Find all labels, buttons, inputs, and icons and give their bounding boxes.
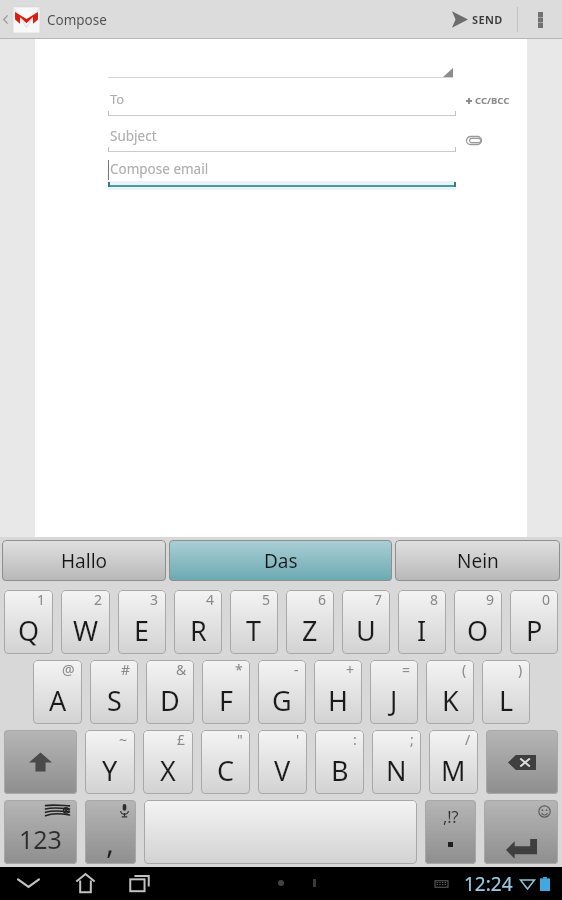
button[interactable]: Comma	[85, 800, 136, 864]
button[interactable]: O	[454, 590, 502, 654]
staticText: ;	[410, 730, 414, 749]
staticText: CC/BCC	[475, 94, 510, 107]
staticText: 8	[430, 590, 439, 609]
staticText: F	[219, 682, 234, 719]
button[interactable]: Period	[425, 800, 476, 864]
staticText: ,!?	[443, 806, 459, 828]
button[interactable]: B	[315, 730, 364, 794]
button[interactable]: Nein	[395, 540, 560, 581]
staticText: 0	[542, 590, 551, 609]
staticText: (	[462, 660, 467, 679]
button[interactable]: N	[372, 730, 421, 794]
button[interactable]: I	[398, 590, 446, 654]
button[interactable]: W	[61, 590, 110, 654]
button[interactable]: X	[143, 730, 193, 794]
staticText: G	[272, 682, 292, 719]
staticText: D	[160, 682, 180, 719]
button[interactable]: Numbers	[4, 800, 77, 864]
staticText: Compose email	[110, 160, 209, 178]
staticText: Y	[102, 752, 118, 789]
button[interactable]: C	[201, 730, 250, 794]
staticText: T	[246, 612, 262, 649]
button[interactable]: Enter	[484, 800, 558, 864]
staticText: Nein	[457, 548, 499, 574]
staticText: S	[107, 682, 122, 719]
button[interactable]: Attach file	[466, 130, 490, 150]
staticText: +	[346, 660, 355, 679]
button[interactable]: R	[174, 590, 222, 654]
staticText: M	[441, 752, 466, 789]
staticText: U	[356, 612, 376, 649]
staticText: H	[328, 682, 349, 719]
button[interactable]: Z	[286, 590, 334, 654]
button[interactable]: H	[314, 660, 362, 724]
button[interactable]: Navigate up	[0, 0, 42, 39]
staticText: 5	[262, 590, 271, 609]
button[interactable]: L	[482, 660, 530, 724]
button[interactable]: Hallo	[2, 540, 166, 581]
button[interactable]: Y	[85, 730, 135, 794]
staticText: R	[190, 612, 207, 649]
staticText: 6	[318, 590, 327, 609]
staticText: Subject	[110, 127, 157, 145]
button[interactable]: S	[90, 660, 138, 724]
staticText: 9	[486, 590, 495, 609]
staticText: K	[442, 682, 459, 719]
button[interactable]: Das	[169, 540, 392, 581]
button[interactable]: More options	[518, 0, 562, 39]
button[interactable]: Recent apps	[117, 867, 161, 900]
staticText: L	[499, 682, 514, 719]
button[interactable]: J	[370, 660, 418, 724]
staticText: I	[417, 612, 427, 649]
staticText: N	[386, 752, 407, 789]
staticText: )	[518, 660, 523, 679]
staticText: £	[177, 730, 186, 749]
staticText: 7	[374, 590, 383, 609]
staticText: SEND	[472, 12, 503, 27]
staticText: 12:24	[464, 871, 513, 897]
button[interactable]: Shift	[4, 730, 77, 794]
staticText: 1	[37, 590, 46, 609]
staticText: 4	[206, 590, 215, 609]
button[interactable]: G	[258, 660, 306, 724]
button[interactable]: SEND	[442, 0, 509, 39]
staticText: &	[176, 660, 187, 679]
button[interactable]: F	[202, 660, 250, 724]
staticText: *	[235, 660, 243, 679]
staticText: 3	[150, 590, 159, 609]
staticText: /	[465, 730, 471, 749]
staticText: =	[402, 660, 411, 679]
staticText: -	[294, 660, 299, 679]
staticText: ~	[119, 730, 128, 749]
button[interactable]: E	[118, 590, 166, 654]
staticText: :	[353, 730, 357, 749]
staticText: 2	[94, 590, 103, 609]
staticText: B	[331, 752, 349, 789]
staticText: '	[296, 730, 300, 749]
button[interactable]: A	[33, 660, 82, 724]
staticText: ,	[106, 822, 115, 863]
staticText: W	[73, 612, 99, 649]
button[interactable]: M	[429, 730, 478, 794]
staticText: @	[62, 660, 75, 679]
staticText: C	[217, 752, 235, 789]
button[interactable]: Home	[63, 867, 107, 900]
button[interactable]: CC/BCC	[466, 94, 510, 107]
button[interactable]: Q	[4, 590, 53, 654]
button[interactable]: T	[230, 590, 278, 654]
staticText: E	[134, 612, 150, 649]
button[interactable]: Delete	[486, 730, 558, 794]
staticText: J	[390, 682, 398, 719]
staticText: To	[110, 90, 125, 108]
button[interactable]: P	[510, 590, 558, 654]
staticText: Das	[264, 548, 298, 574]
button[interactable]: Space	[144, 800, 417, 864]
button[interactable]: Back	[6, 867, 50, 900]
button[interactable]: U	[342, 590, 390, 654]
staticText: P	[526, 612, 543, 649]
staticText: "	[237, 730, 243, 749]
button[interactable]: V	[258, 730, 307, 794]
button[interactable]: K	[426, 660, 474, 724]
button[interactable]: D	[146, 660, 194, 724]
staticText: Z	[302, 612, 318, 649]
